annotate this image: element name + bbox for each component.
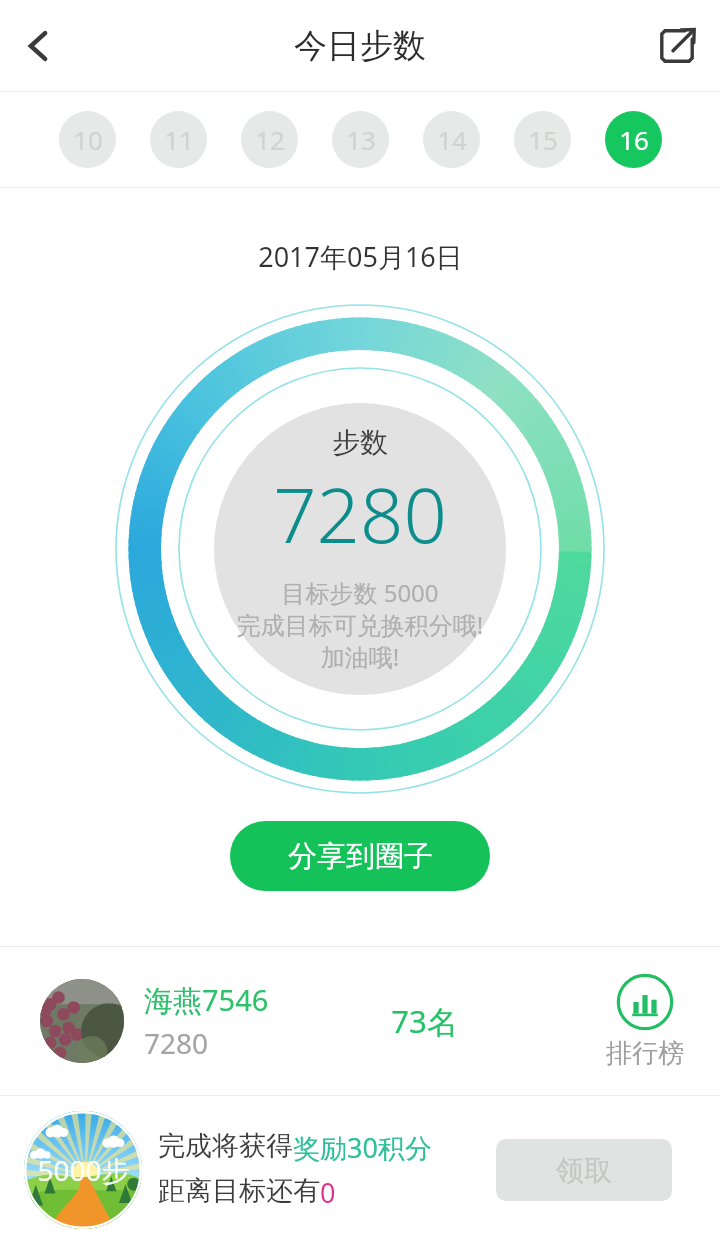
- button[interactable]: 12: [241, 111, 298, 168]
- staticText: 16: [619, 122, 649, 157]
- button[interactable]: 排行榜: [580, 973, 710, 1070]
- staticText: 奖励30积分: [293, 1129, 432, 1166]
- staticText: 0: [320, 1174, 336, 1211]
- staticText: 13: [346, 122, 376, 157]
- staticText: 11: [164, 122, 194, 157]
- staticText: 14: [437, 122, 467, 157]
- staticText: 73名: [391, 1000, 458, 1042]
- staticText: 步数: [332, 425, 388, 460]
- staticText: 7280: [144, 1024, 209, 1062]
- button[interactable]: 16: [605, 111, 662, 168]
- button[interactable]: 5000步: [24, 1111, 142, 1229]
- button[interactable]: 领取: [496, 1139, 672, 1201]
- staticText: 领取: [556, 1153, 612, 1188]
- button[interactable]: 11: [150, 111, 207, 168]
- staticText: 海燕7546: [144, 980, 269, 1020]
- button[interactable]: Share: [634, 3, 720, 89]
- staticText: 12: [255, 122, 285, 157]
- button[interactable]: 13: [332, 111, 389, 168]
- button[interactable]: Back: [0, 7, 78, 85]
- staticText: 2017年05月16日: [258, 238, 463, 275]
- staticText: 排行榜: [606, 1037, 684, 1070]
- button[interactable]: 海燕7546: [0, 947, 720, 1095]
- staticText: 5000步: [37, 1151, 130, 1189]
- button[interactable]: 10: [59, 111, 116, 168]
- staticText: 分享到圈子: [288, 838, 433, 875]
- staticText: 10: [73, 122, 103, 157]
- button[interactable]: 分享到圈子: [230, 821, 490, 891]
- staticText: 15: [528, 122, 558, 157]
- button[interactable]: 15: [514, 111, 571, 168]
- staticText: 目标步数 5000 完成目标可兑换积分哦! 加油哦!: [210, 576, 510, 673]
- staticText: 完成将获得: [158, 1129, 293, 1163]
- staticText: 7280: [273, 462, 447, 566]
- button[interactable]: 14: [423, 111, 480, 168]
- staticText: 今日步数: [294, 25, 426, 67]
- staticText: 距离目标还有: [158, 1174, 320, 1208]
